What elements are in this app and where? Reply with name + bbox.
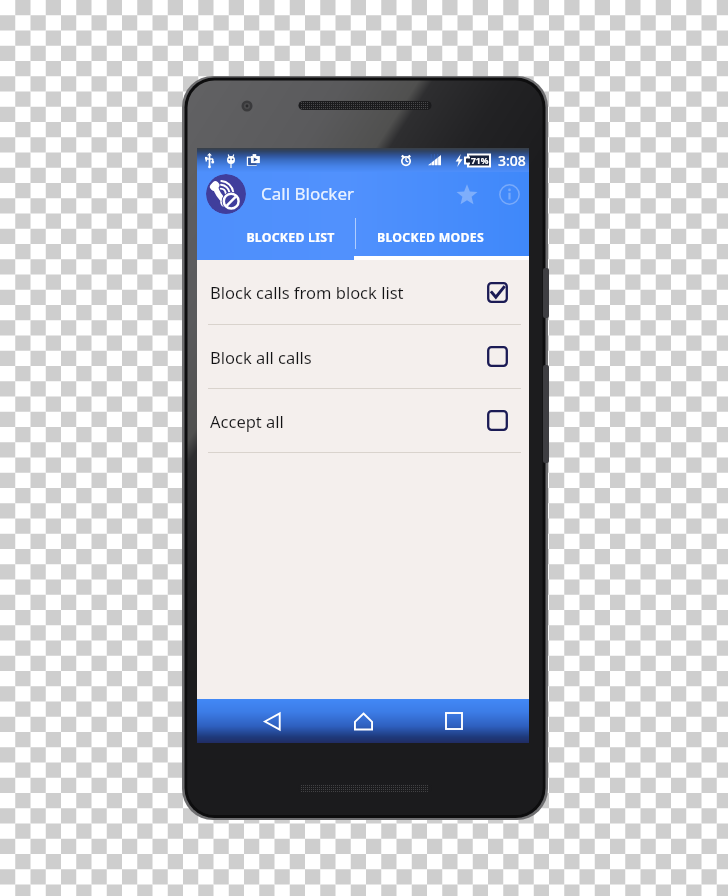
- staticText: 3:08: [498, 151, 526, 170]
- button[interactable]: Recent apps: [435, 702, 473, 740]
- button[interactable]: BLOCKED LIST: [197, 215, 355, 260]
- button[interactable]: Favorite: [450, 177, 484, 211]
- button[interactable]: Block all calls: [197, 324, 529, 388]
- staticText: BLOCKED LIST: [246, 229, 335, 246]
- button[interactable]: Back: [253, 702, 291, 740]
- staticText: Call Blocker: [261, 182, 355, 205]
- button[interactable]: Info: [494, 179, 524, 209]
- staticText: Block all calls: [210, 346, 312, 368]
- button[interactable]: BLOCKED MODES: [355, 215, 529, 260]
- staticText: Block calls from block list: [210, 281, 404, 303]
- staticText: Accept all: [210, 410, 284, 432]
- staticText: BLOCKED MODES: [377, 229, 484, 246]
- button[interactable]: Accept all: [197, 388, 529, 452]
- button[interactable]: Block calls from block list: [197, 260, 529, 324]
- staticText: 71%: [471, 155, 489, 167]
- button[interactable]: Home: [344, 702, 382, 740]
- button[interactable]: Call Blocker app icon: [206, 174, 246, 214]
